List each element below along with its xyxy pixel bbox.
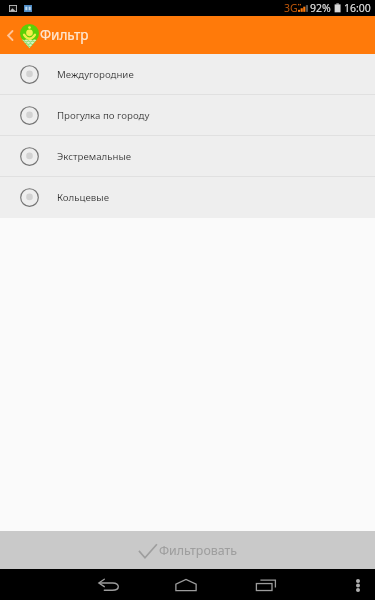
button[interactable]: Экстремальные <box>0 136 375 176</box>
staticText: Кольцевые <box>57 191 110 204</box>
button[interactable]: Recent apps <box>243 569 288 600</box>
button[interactable]: More options <box>341 569 375 600</box>
button[interactable]: Прогулка по городу <box>0 95 375 135</box>
staticText: Фильтр <box>40 26 89 44</box>
staticText: Фильтровать <box>159 542 238 559</box>
button[interactable]: Кольцевые <box>0 177 375 218</box>
staticText: Междугородние <box>57 68 134 81</box>
button[interactable]: Home <box>163 569 208 600</box>
staticText: 3G <box>284 1 298 15</box>
staticText: Прогулка по городу <box>57 109 150 122</box>
button[interactable]: Фильтровать <box>0 531 375 569</box>
staticText: Экстремальные <box>57 150 132 163</box>
button[interactable]: Междугородние <box>0 54 375 94</box>
staticText: 92% <box>310 1 331 15</box>
staticText: 16:00 <box>344 1 371 15</box>
button[interactable]: Back <box>0 16 20 54</box>
button[interactable]: Back <box>86 569 131 600</box>
